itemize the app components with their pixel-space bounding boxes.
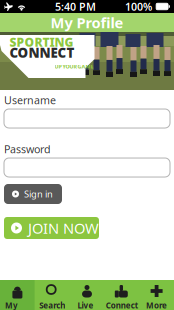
staticText: 5:40 PM [55, 0, 96, 14]
button[interactable]: Sign in [4, 184, 62, 204]
button[interactable]: JOIN NOW [4, 217, 99, 239]
staticText: More [146, 300, 167, 310]
button[interactable]: More [139, 280, 174, 310]
staticText: Live Feed [77, 300, 96, 310]
staticText: My Profile [5, 300, 30, 310]
staticText: My Profile [50, 13, 123, 32]
staticText: Search [39, 300, 65, 310]
staticText: Username [4, 93, 56, 107]
button[interactable]: My Profile [0, 280, 35, 310]
staticText: Connect [106, 300, 138, 310]
staticText: UP YOUR GAME [54, 63, 93, 70]
staticText: 100% [125, 0, 152, 14]
button[interactable]: Search [35, 280, 70, 310]
staticText: CONNECT [9, 44, 74, 61]
button[interactable]: Live Feed [70, 280, 104, 310]
button[interactable]: Connect [104, 280, 139, 310]
staticText: SPORTING [9, 34, 73, 50]
staticText: Password [4, 142, 51, 156]
staticText: Sign in [24, 188, 53, 200]
staticText: JOIN NOW [28, 218, 99, 238]
